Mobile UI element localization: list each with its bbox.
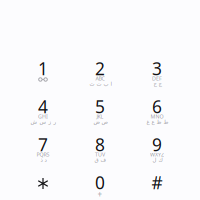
staticText: 0 [95, 171, 105, 194]
button[interactable]: 6 [128, 92, 185, 130]
staticText: # [151, 171, 162, 194]
button[interactable]: 9 [128, 130, 185, 168]
staticText: 6 [152, 95, 162, 118]
staticText: 3 [152, 57, 162, 80]
staticText: 4 [38, 95, 48, 118]
button[interactable]: 1 [14, 54, 71, 92]
staticText: MNO [150, 113, 163, 120]
staticText: ABC [95, 75, 104, 82]
staticText: ط ظ ع غ [146, 119, 168, 125]
staticText: ص ض [93, 119, 107, 125]
staticText: 2 [95, 57, 105, 80]
staticText: 9 [152, 133, 162, 156]
staticText: WXYZ [150, 151, 164, 158]
staticText: PQRS [36, 151, 49, 158]
staticText: JKL [96, 113, 103, 120]
button[interactable]: 0 [71, 168, 128, 200]
staticText: ر ز س ش [30, 119, 56, 125]
staticText: 1 [38, 57, 48, 80]
staticText: 7 [38, 133, 48, 156]
staticText: ك ل [152, 157, 162, 163]
button[interactable] [14, 168, 71, 200]
button[interactable]: # [128, 168, 185, 200]
button[interactable]: 4 [14, 92, 71, 130]
staticText: ج ح [153, 81, 161, 87]
staticText: + [97, 189, 102, 200]
staticText: 5 [95, 95, 105, 118]
staticText: ف ق [94, 157, 106, 163]
staticText: 8 [95, 133, 105, 156]
staticText: TUV [95, 151, 105, 158]
button[interactable]: 7 [14, 130, 71, 168]
button[interactable]: 3 [128, 54, 185, 92]
staticText: GHI [38, 113, 48, 120]
button[interactable]: 2 [71, 54, 128, 92]
button[interactable]: 5 [71, 92, 128, 130]
staticText: د ذ [40, 157, 46, 163]
button[interactable]: 8 [71, 130, 128, 168]
staticText: DEF [152, 75, 162, 82]
staticText: ا ب ت ث [89, 81, 111, 87]
